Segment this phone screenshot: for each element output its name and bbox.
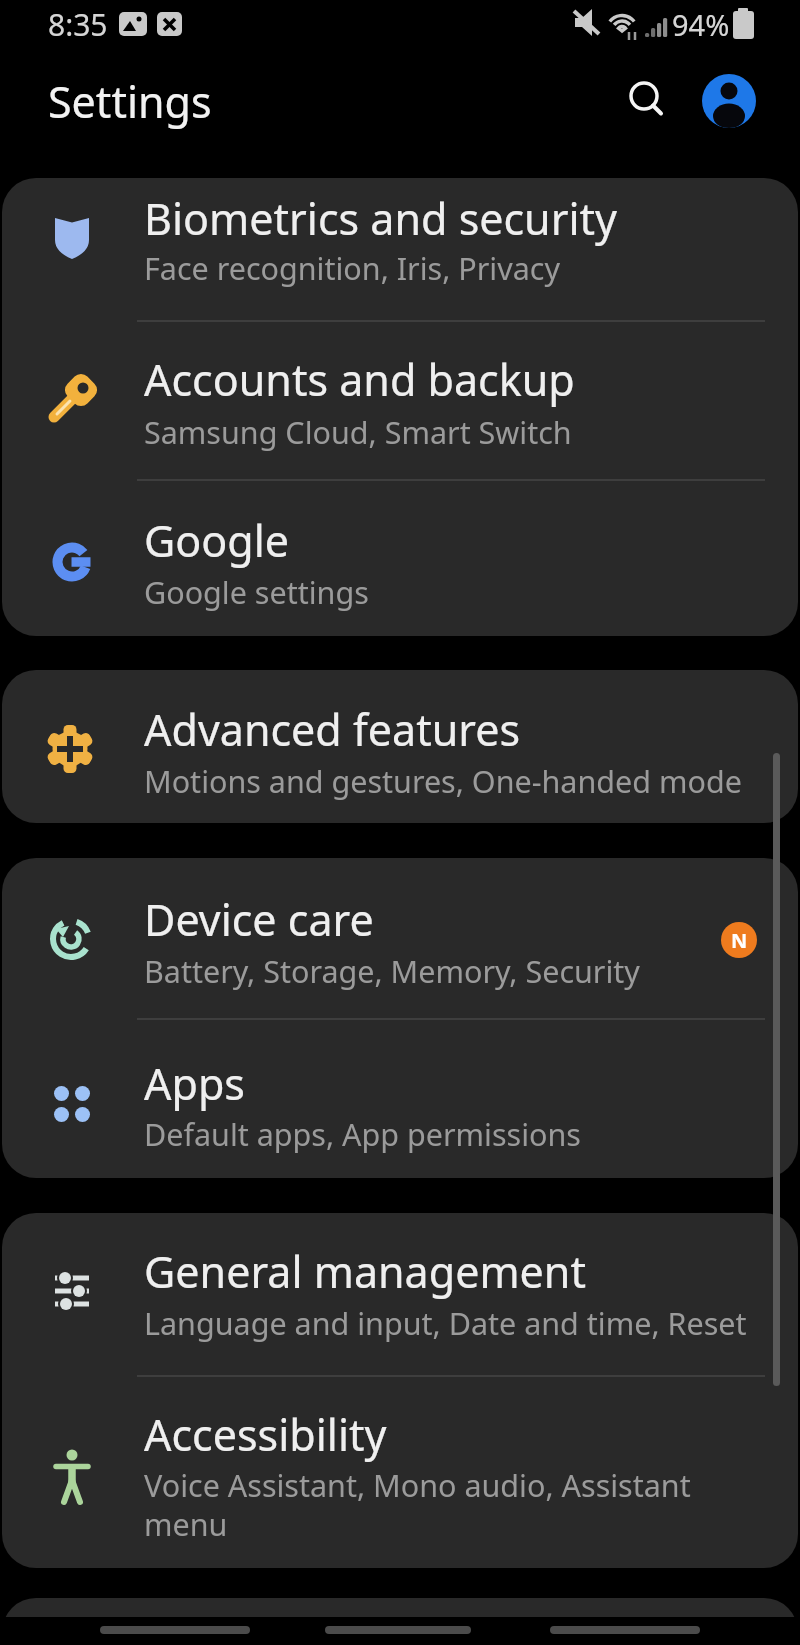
button[interactable] — [702, 74, 756, 128]
staticText: Advanced features — [144, 700, 520, 759]
staticText: Motions and gestures, One-handed mode — [144, 760, 742, 802]
staticText: Apps — [144, 1054, 245, 1113]
staticText: Biometrics and security — [144, 189, 617, 248]
staticText: Samsung Cloud, Smart Switch — [144, 411, 572, 453]
staticText: Google — [144, 511, 290, 570]
button[interactable] — [616, 72, 672, 128]
staticText: 8:35 — [48, 4, 108, 45]
button[interactable]: Biometrics and security — [2, 178, 798, 320]
button[interactable]: Accessibility — [2, 1377, 798, 1568]
button[interactable]: Apps — [2, 1020, 798, 1178]
staticText: Accounts and backup — [144, 350, 575, 409]
button[interactable]: Google — [2, 481, 798, 636]
staticText: Device care — [144, 890, 374, 949]
staticText: Accessibility — [144, 1405, 387, 1464]
button[interactable]: Advanced features — [2, 670, 798, 823]
staticText: Settings — [48, 72, 212, 131]
staticText: N — [731, 927, 748, 954]
staticText: Voice Assistant, Mono audio, Assistant m… — [144, 1464, 691, 1545]
button[interactable]: General management — [2, 1213, 798, 1375]
button[interactable]: Accounts and backup — [2, 322, 798, 479]
staticText: 94% — [672, 5, 730, 44]
staticText: Language and input, Date and time, Reset — [144, 1302, 747, 1344]
staticText: Face recognition, Iris, Privacy — [144, 247, 560, 289]
staticText: Battery, Storage, Memory, Security — [144, 950, 640, 992]
button[interactable]: Device care — [2, 858, 798, 1018]
staticText: Default apps, App permissions — [144, 1113, 581, 1155]
staticText: General management — [144, 1242, 586, 1301]
staticText: Google settings — [144, 571, 369, 613]
